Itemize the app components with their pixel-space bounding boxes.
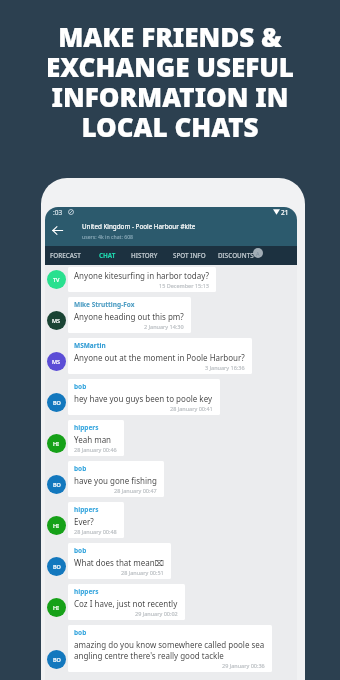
staticText: 28 January 00:48 [74, 528, 117, 535]
staticText: amazing do you know somewhere called poo… [74, 639, 265, 650]
button[interactable]: BO [47, 461, 297, 497]
button[interactable]: BO [47, 625, 297, 672]
staticText: 28 January 00:41 [170, 405, 213, 412]
button[interactable]: DISCOUNTS [218, 246, 254, 265]
staticText: hippers [74, 587, 99, 596]
staticText: 29 January 00:02 [135, 610, 178, 617]
staticText: 28 January 00:47 [114, 487, 157, 494]
button[interactable]: FORECAST [50, 246, 81, 265]
staticText: FORECAST [50, 251, 81, 260]
staticText: Anyone kitesurfing in harbor today? [74, 270, 209, 281]
staticText: users: 4k in chat: 608 [82, 233, 134, 240]
staticText: BO [53, 656, 61, 663]
staticText: Anyone heading out this pm? [74, 311, 184, 322]
staticText: Yeah man [74, 434, 112, 445]
button[interactable]: Back [49, 222, 66, 239]
staticText: HISTORY [131, 251, 158, 260]
staticText: CHAT [99, 251, 116, 260]
staticText: BO [53, 481, 61, 488]
staticText: TV [53, 276, 60, 283]
staticText: Ever? [74, 516, 94, 527]
button[interactable]: TV [47, 267, 297, 292]
staticText: HI [53, 440, 60, 447]
staticText: 28 January 00:51 [121, 569, 164, 576]
staticText: HI [53, 604, 60, 611]
button[interactable]: SPOT INFO [173, 246, 206, 265]
staticText: 15 December 15:13 [159, 282, 209, 289]
button[interactable]: HI [47, 584, 297, 620]
button[interactable]: BO [47, 379, 297, 415]
staticText: What does that mean⌧ [74, 557, 164, 568]
staticText: bob [74, 546, 87, 555]
staticText: United Kingdom - Poole Harbour #kite [82, 222, 196, 231]
button[interactable]: HI [47, 502, 297, 538]
staticText: 2 January 14:30 [144, 323, 184, 330]
staticText: BO [53, 563, 61, 570]
button[interactable]: HI [47, 420, 297, 456]
staticText: BO [53, 399, 61, 406]
staticText: 3 January 16:36 [205, 364, 245, 371]
staticText: MAKE FRIENDS & EXCHANGE USEFUL INFORMATI… [46, 19, 294, 145]
staticText: bob [74, 628, 87, 637]
button[interactable]: MS [47, 338, 297, 374]
button[interactable]: BO [47, 543, 297, 579]
staticText: 21 [281, 208, 289, 217]
staticText: Coz I have, just not recently [74, 598, 178, 609]
staticText: MS [52, 358, 61, 365]
staticText: bob [74, 382, 87, 391]
button[interactable]: HISTORY [131, 246, 158, 265]
staticText: HI [53, 522, 60, 529]
staticText: SPOT INFO [173, 251, 206, 260]
staticText: Mike Strutting-Fox [74, 300, 135, 309]
staticText: hippers [74, 423, 99, 432]
staticText: hey have you guys been to poole key [74, 393, 213, 404]
staticText: bob [74, 464, 87, 473]
staticText: Anyone out at the moment in Poole Harbou… [74, 352, 245, 363]
button[interactable]: CHAT [99, 246, 116, 265]
staticText: have you gone fishing [74, 475, 157, 486]
staticText: DISCOUNTS [218, 251, 254, 260]
staticText: :03 [53, 208, 63, 217]
button[interactable]: MS [47, 297, 297, 333]
staticText: MSMartin [74, 341, 106, 350]
staticText: hippers [74, 505, 99, 514]
staticText: angling centre there's really good tackl… [74, 650, 224, 661]
staticText: 28 January 00:46 [74, 446, 117, 453]
staticText: A [256, 250, 260, 257]
staticText: MS [52, 317, 61, 324]
staticText: 29 January 00:36 [222, 662, 265, 669]
